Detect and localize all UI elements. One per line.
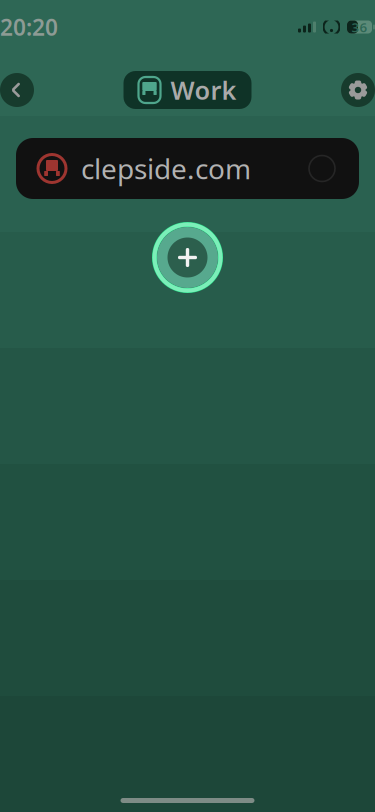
button[interactable]: Add session — [152, 222, 223, 293]
button[interactable]: Back — [0, 73, 34, 107]
button[interactable]: Settings — [341, 73, 375, 107]
staticText: Work — [170, 73, 236, 107]
button[interactable]: Work — [123, 71, 251, 109]
staticText: 20:20 — [0, 12, 58, 42]
button[interactable]: clepside.com — [16, 138, 359, 199]
staticText: 36 — [351, 18, 367, 36]
staticText: clepside.com — [81, 150, 251, 187]
